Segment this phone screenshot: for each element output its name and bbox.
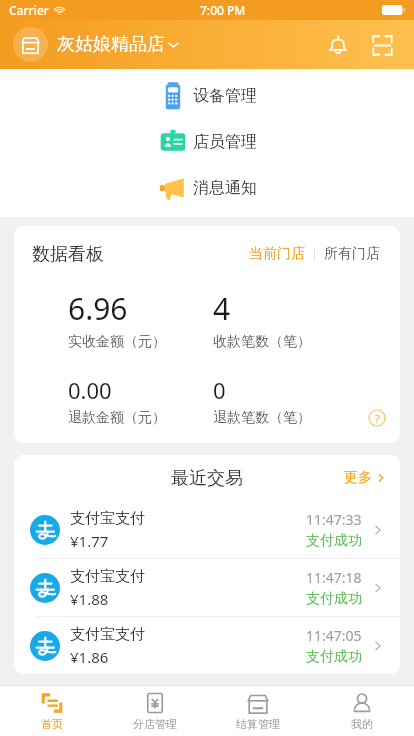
staticText: 11:47:33 [306,510,362,529]
staticText: ¥1.77 [70,531,109,551]
staticText: ? [375,411,380,426]
button[interactable]: 支付宝支付 [14,501,400,558]
staticText: 收款笔数（笔） [213,333,311,351]
staticText: 灰姑娘精品店 [57,33,165,56]
staticText: 7:00 PM [200,2,246,18]
staticText: 最近交易 [171,467,243,490]
button[interactable]: 所有门店 [322,242,382,266]
staticText: 支付成功 [306,648,362,666]
staticText: 设备管理 [193,86,257,106]
staticText: 支付成功 [306,532,362,550]
button[interactable]: 分店管理 [103,686,206,736]
staticText: 所有门店 [324,245,380,263]
staticText: 退款笔数（笔） [213,409,311,427]
button[interactable]: Notifications [318,25,358,65]
staticText: 分店管理 [133,717,177,731]
staticText: 11:47:18 [306,568,362,587]
staticText: 4 [213,288,231,329]
button[interactable]: 我的 [310,686,414,736]
staticText: 结算管理 [236,717,280,731]
button[interactable]: 支付宝支付 [14,559,400,616]
button[interactable]: 首页 [0,686,103,736]
staticText: 11:47:05 [306,626,362,645]
staticText: Carrier [9,2,49,18]
button[interactable]: Help [368,409,386,427]
staticText: 更多 [344,469,372,487]
staticText: ¥1.86 [70,647,109,667]
button[interactable]: 消息通知 [154,172,261,204]
button[interactable]: 灰姑娘精品店 [13,27,186,62]
button[interactable]: 结算管理 [206,686,310,736]
button[interactable]: 当前门店 [247,242,307,266]
staticText: 支付宝支付 [70,625,145,644]
staticText: 0 [213,375,226,405]
button[interactable]: 设备管理 [154,80,261,112]
staticText: 店员管理 [193,132,257,152]
staticText: 首页 [41,717,63,731]
staticText: 退款金额（元） [68,409,166,427]
staticText: 6.96 [68,288,128,329]
staticText: 消息通知 [193,178,257,198]
staticText: 支付宝支付 [70,509,145,528]
button[interactable]: 更多 [330,463,400,493]
staticText: 支付宝支付 [70,567,145,586]
staticText: 我的 [351,717,373,731]
staticText: 数据看板 [32,243,104,266]
staticText: 支付成功 [306,590,362,608]
staticText: 当前门店 [249,245,305,263]
button[interactable]: 店员管理 [154,126,261,158]
button[interactable]: Scan QR code [362,25,402,65]
button[interactable]: 支付宝支付 [14,617,400,674]
staticText: 0.00 [68,375,112,405]
staticText: 实收金额（元） [68,333,166,351]
staticText: ¥1.88 [70,589,109,609]
